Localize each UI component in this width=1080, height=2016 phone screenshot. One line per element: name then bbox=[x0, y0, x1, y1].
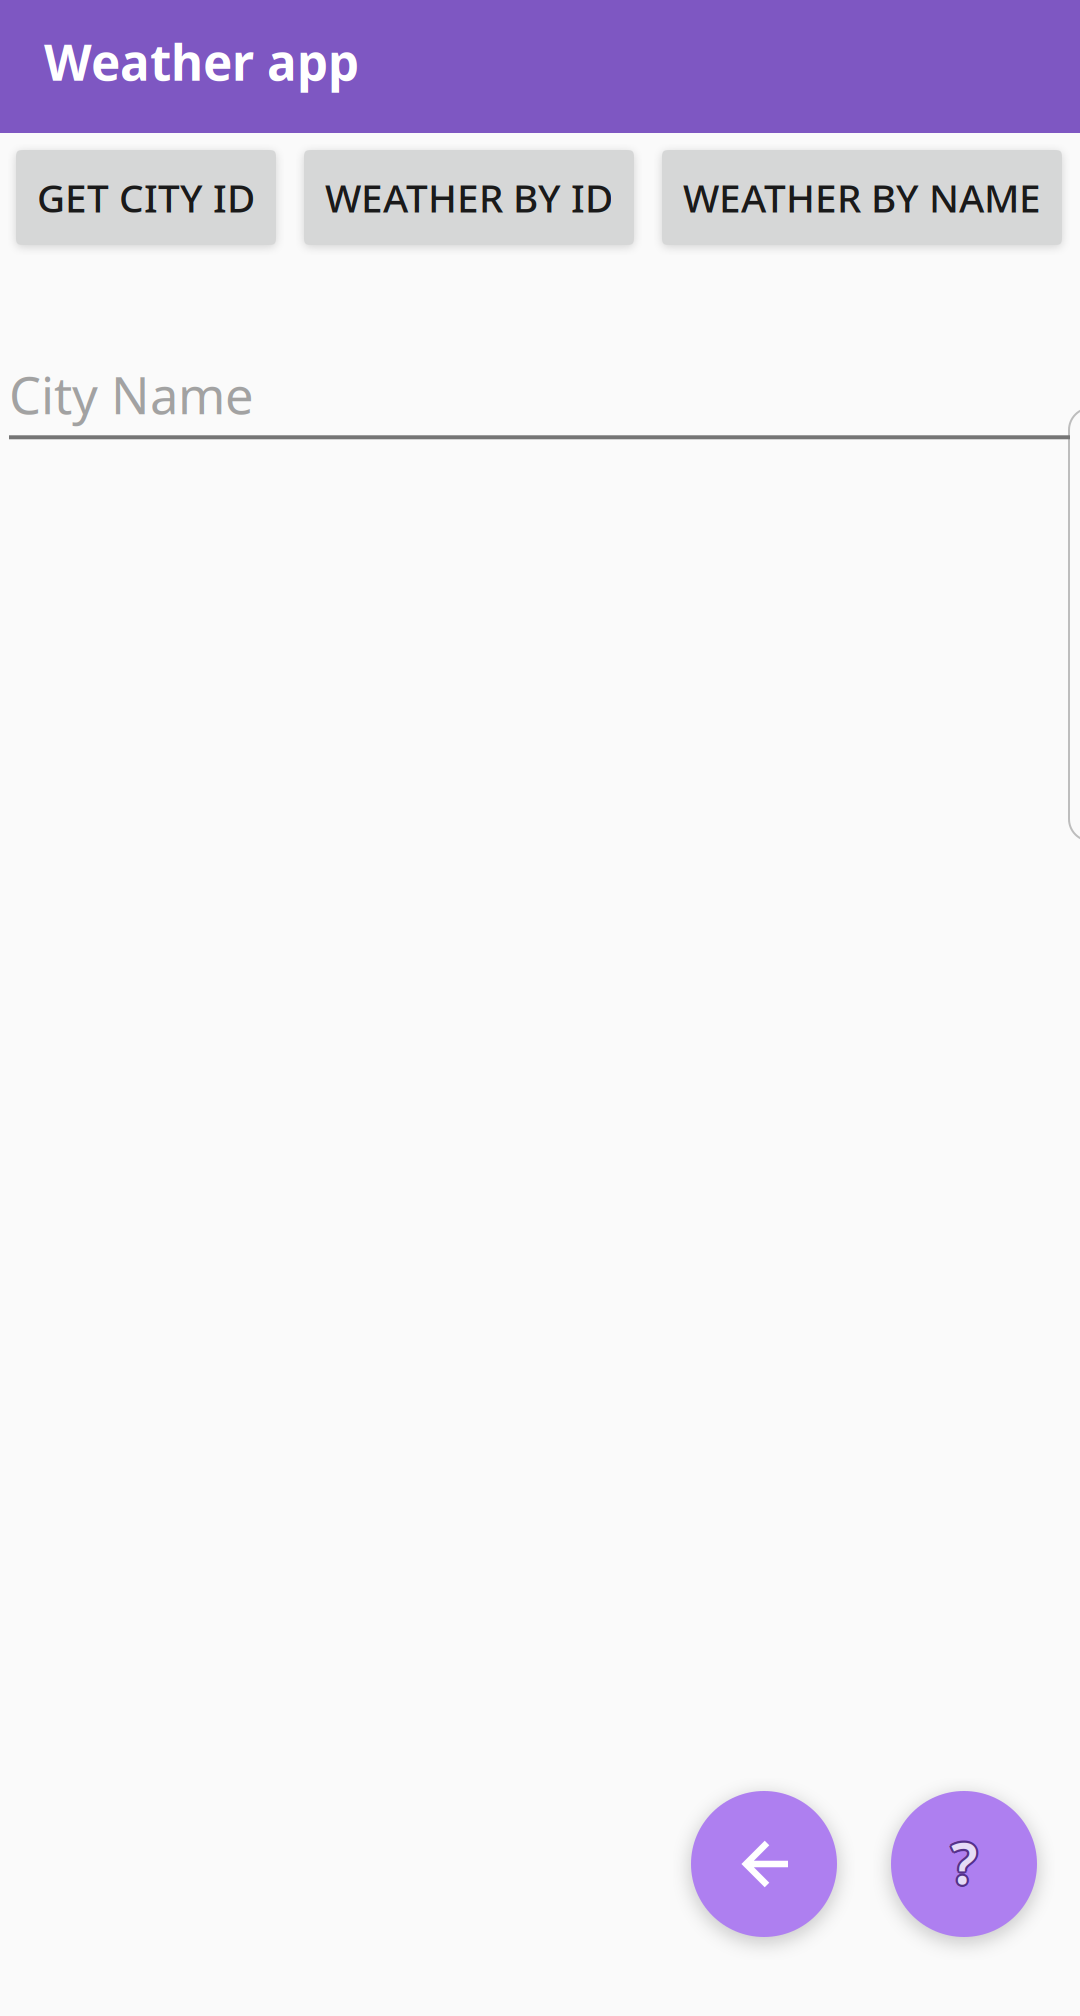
button[interactable]: WEATHER BY NAME bbox=[662, 150, 1062, 245]
staticText: WEATHER BY ID bbox=[325, 172, 613, 223]
button[interactable]: Back bbox=[691, 1791, 837, 1937]
staticText: WEATHER BY NAME bbox=[683, 172, 1041, 223]
staticText: Weather app bbox=[44, 29, 359, 94]
staticText: GET CITY ID bbox=[37, 172, 255, 223]
button[interactable]: WEATHER BY ID bbox=[304, 150, 634, 245]
staticText: City Name bbox=[9, 361, 254, 428]
button[interactable]: GET CITY ID bbox=[16, 150, 276, 245]
button[interactable]: Help bbox=[891, 1791, 1037, 1937]
button[interactable]: City Name bbox=[9, 361, 1070, 439]
